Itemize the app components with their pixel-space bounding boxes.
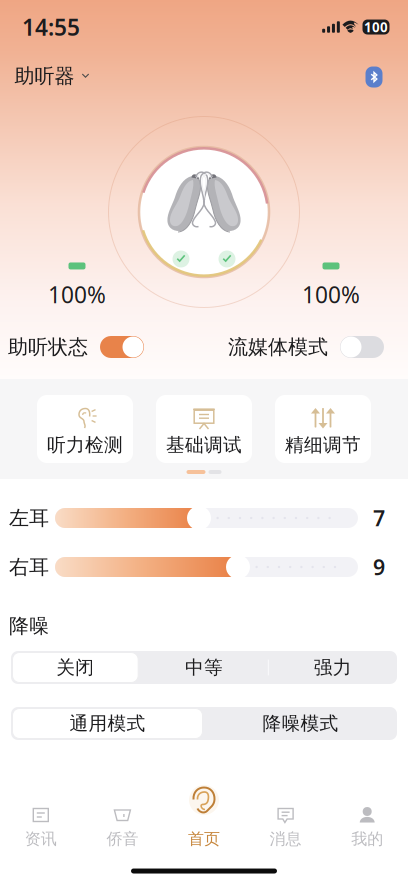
button[interactable]: 资讯 [0,800,82,858]
staticText: 听力检测 [47,433,123,456]
button[interactable]: 听力检测 [37,395,133,463]
button[interactable]: 通用模式 [11,707,204,740]
button[interactable]: 流媒体模式 [228,329,384,365]
staticText: 流媒体模式 [228,335,328,359]
button[interactable]: 首页 [163,800,245,858]
button[interactable]: 降噪模式 [204,707,397,740]
button[interactable]: 我的 [326,800,408,858]
button[interactable]: 精细调节 [275,395,371,463]
staticText: 侨音 [106,829,138,849]
staticText: 助听状态 [8,335,88,359]
staticText: 7 [373,504,385,532]
staticText: 100 [364,18,388,36]
button[interactable]: 蓝牙 [359,62,389,92]
staticText: 首页 [188,829,220,849]
button[interactable]: 强力 [268,651,397,684]
staticText: 资讯 [25,829,57,849]
staticText: 精细调节 [285,433,361,456]
button[interactable]: 关闭 [11,651,140,684]
staticText: 中等 [185,656,223,679]
staticText: 9 [373,553,385,581]
staticText: 我的 [351,829,383,849]
button[interactable]: 基础调试 [156,395,252,463]
staticText: 关闭 [56,656,94,679]
staticText: 降噪模式 [262,712,338,735]
staticText: 强力 [314,656,352,679]
staticText: 通用模式 [69,712,145,735]
staticText: 助听器 [14,64,74,88]
staticText: 14:55 [22,12,80,42]
button[interactable]: 消息 [245,800,326,858]
button[interactable]: 助听器 [8,56,95,96]
staticText: 左耳 [9,506,49,530]
staticText: 消息 [270,829,302,849]
button[interactable]: 中等 [140,651,268,684]
staticText: 右耳 [9,555,49,579]
staticText: 100% [302,279,360,309]
staticText: 降噪 [9,614,49,638]
button[interactable]: 助听状态 [8,329,144,365]
staticText: 100% [48,279,106,309]
staticText: 基础调试 [166,433,242,456]
button[interactable]: 侨音 [82,800,163,858]
